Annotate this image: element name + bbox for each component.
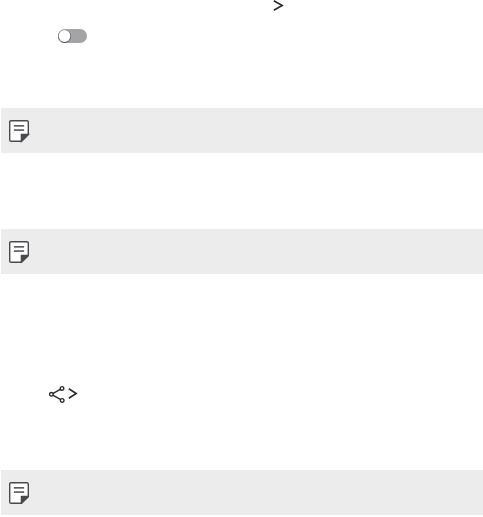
button[interactable]: Note: [1, 229, 483, 274]
button[interactable]: Expand: [273, 0, 283, 11]
button[interactable]: Share: [46, 383, 80, 405]
button[interactable]: Note: [1, 470, 483, 515]
button[interactable]: Toggle: [58, 29, 87, 43]
button[interactable]: Note: [1, 108, 483, 153]
